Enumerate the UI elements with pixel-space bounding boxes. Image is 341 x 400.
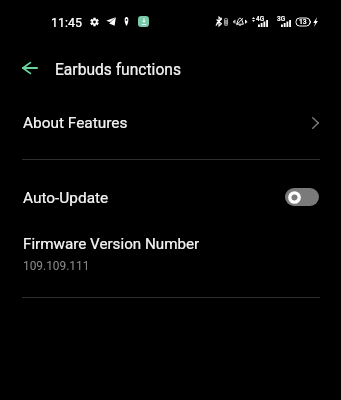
staticText: Auto-Update — [23, 189, 109, 207]
staticText: 4G — [256, 15, 265, 23]
button[interactable]: About Features — [0, 91, 341, 154]
staticText: 109.109.111 — [23, 259, 90, 273]
button[interactable]: Auto-Update — [0, 169, 341, 227]
staticText: About Features — [23, 114, 128, 132]
button[interactable]: Back — [12, 50, 48, 86]
staticText: 11:45 — [51, 15, 82, 30]
button[interactable]: Auto-Update toggle — [285, 188, 319, 206]
staticText: 13 — [299, 18, 307, 26]
button[interactable]: Firmware Version Number — [0, 225, 341, 287]
staticText: Firmware Version Number — [23, 235, 200, 253]
staticText: 3G — [277, 15, 286, 23]
staticText: Earbuds functions — [55, 61, 181, 79]
